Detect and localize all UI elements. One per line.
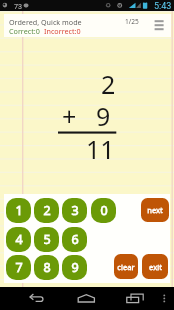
staticText: 5:43 bbox=[154, 1, 172, 12]
staticText: next bbox=[147, 205, 163, 215]
button[interactable]: 9 bbox=[62, 255, 87, 280]
staticText: clear bbox=[117, 262, 135, 272]
staticText: 7 bbox=[15, 259, 23, 276]
staticText: 0 bbox=[100, 202, 108, 219]
staticText: 9 bbox=[96, 99, 111, 133]
staticText: 2 bbox=[101, 67, 116, 101]
staticText: Ordered, Quick mode bbox=[9, 17, 82, 27]
staticText: 6 bbox=[71, 231, 79, 248]
staticText: 5 bbox=[43, 231, 51, 248]
button[interactable]: 0 bbox=[91, 198, 116, 223]
button[interactable]: exit bbox=[142, 254, 168, 279]
button[interactable]: 4 bbox=[6, 227, 31, 252]
staticText: exit bbox=[149, 262, 162, 272]
staticText: + bbox=[62, 99, 77, 133]
button[interactable]: clear bbox=[114, 254, 138, 279]
staticText: 8 bbox=[43, 259, 51, 276]
button[interactable]: More options bbox=[152, 16, 171, 35]
staticText: 4 bbox=[15, 231, 23, 248]
button[interactable]: 3 bbox=[62, 198, 87, 223]
staticText: 1 bbox=[15, 202, 23, 219]
button[interactable]: 7 bbox=[6, 255, 31, 280]
button[interactable]: Recent apps bbox=[124, 291, 146, 310]
button[interactable]: Back bbox=[27, 291, 49, 310]
staticText: Correct:0 bbox=[9, 26, 40, 36]
button[interactable]: Home bbox=[76, 291, 98, 310]
button[interactable]: 6 bbox=[62, 227, 87, 252]
staticText: 9 bbox=[71, 259, 79, 276]
staticText: 2 bbox=[43, 202, 51, 219]
button[interactable]: 2 bbox=[34, 198, 59, 223]
staticText: 73 bbox=[14, 2, 23, 10]
button[interactable]: 8 bbox=[34, 255, 59, 280]
button[interactable]: More bbox=[159, 291, 170, 302]
staticText: 11 bbox=[86, 132, 115, 166]
button[interactable]: 5 bbox=[34, 227, 59, 252]
staticText: 1/25 bbox=[125, 17, 139, 26]
button[interactable]: next bbox=[141, 198, 169, 222]
staticText: Incorrect:0 bbox=[44, 26, 81, 36]
staticText: 3 bbox=[71, 202, 79, 219]
button[interactable]: 1 bbox=[6, 198, 31, 223]
